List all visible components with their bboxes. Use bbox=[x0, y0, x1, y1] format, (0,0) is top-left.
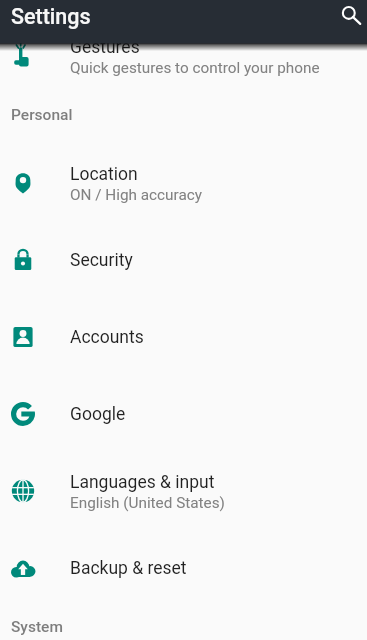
staticText: Settings bbox=[11, 4, 91, 29]
button[interactable]: Location bbox=[0, 143, 367, 220]
staticText: Google bbox=[70, 404, 126, 425]
button[interactable]: Gestures bbox=[0, 16, 367, 93]
staticText: ON / High accuracy bbox=[70, 186, 202, 204]
button[interactable]: Accounts bbox=[0, 297, 367, 374]
button[interactable]: Google bbox=[0, 374, 367, 451]
button[interactable]: Languages & input bbox=[0, 451, 367, 528]
staticText: Security bbox=[70, 250, 133, 271]
button[interactable]: Backup & reset bbox=[0, 528, 367, 605]
staticText: Languages & input bbox=[70, 472, 215, 493]
button[interactable]: Search bbox=[331, 0, 367, 36]
staticText: Accounts bbox=[70, 327, 144, 348]
staticText: Gestures bbox=[70, 37, 140, 58]
staticText: System bbox=[11, 618, 63, 636]
staticText: Backup & reset bbox=[70, 558, 187, 579]
staticText: Location bbox=[70, 164, 138, 185]
button[interactable]: Security bbox=[0, 220, 367, 297]
staticText: Quick gestures to control your phone bbox=[70, 59, 320, 77]
staticText: Personal bbox=[11, 106, 73, 124]
staticText: English (United States) bbox=[70, 494, 225, 512]
